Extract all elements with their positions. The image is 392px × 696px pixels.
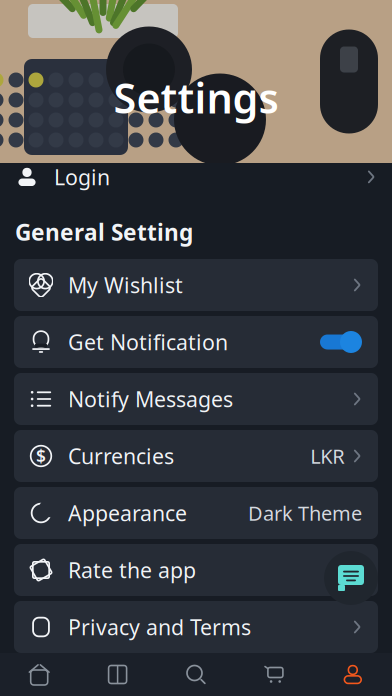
button[interactable]: Chat support <box>324 551 378 605</box>
button[interactable]: Rate the app <box>14 544 378 596</box>
staticText: Get Notification <box>68 328 228 356</box>
button[interactable]: Privacy and Terms <box>14 601 378 653</box>
button[interactable]: My Wishlist <box>14 259 378 311</box>
button[interactable]: Get Notification <box>14 316 378 368</box>
button[interactable]: Search <box>157 653 235 696</box>
staticText: Dark Theme <box>248 500 362 526</box>
staticText: My Wishlist <box>68 271 183 299</box>
button[interactable]: Categories <box>78 653 157 696</box>
button[interactable]: Notify Messages <box>14 373 378 425</box>
staticText: LKR <box>310 443 344 469</box>
button[interactable]: Home <box>0 653 78 696</box>
button[interactable]: Appearance <box>14 487 378 539</box>
staticText: Settings <box>113 70 278 125</box>
staticText: Currencies <box>68 442 174 470</box>
staticText: Notify Messages <box>68 385 233 413</box>
staticText: Rate the app <box>68 556 196 584</box>
staticText: General Setting <box>15 217 193 247</box>
button[interactable]: Account <box>314 653 392 696</box>
staticText: $ <box>36 444 46 467</box>
button[interactable]: $ <box>14 430 378 482</box>
button[interactable]: Cart <box>235 653 314 696</box>
button[interactable]: Login <box>0 149 392 205</box>
staticText: Login <box>54 163 110 191</box>
staticText: Appearance <box>68 499 187 527</box>
staticText: Privacy and Terms <box>68 613 251 641</box>
